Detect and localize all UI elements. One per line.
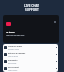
staticText: Billing help	[8, 62, 17, 64]
button[interactable]: Payments	[3, 58, 58, 65]
staticText: Returns & refunds	[8, 52, 26, 55]
staticText: Delivery status	[8, 48, 20, 50]
button[interactable]: My account	[3, 65, 58, 72]
staticText: SUPPORT	[25, 8, 39, 12]
button[interactable]: Returns & refunds	[3, 51, 58, 58]
staticText: Start a return	[8, 55, 19, 57]
staticText: Payments	[8, 59, 18, 62]
button[interactable]: Track my order	[3, 44, 58, 51]
staticText: Track my order	[8, 45, 23, 48]
staticText: LIVE CHAT	[24, 4, 40, 8]
staticText: Hi there!	[6, 31, 15, 34]
staticText: My account	[8, 66, 19, 69]
staticText: How can we help you?	[6, 34, 25, 36]
staticText: Login issues	[8, 69, 18, 71]
